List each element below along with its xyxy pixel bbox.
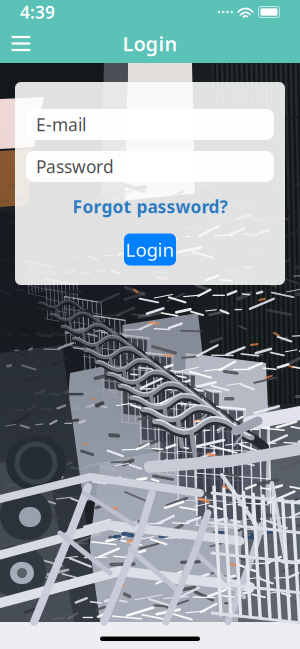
button[interactable]: E-mail (26, 109, 274, 140)
button[interactable]: Forgot password? (72, 200, 227, 213)
staticText: Forgot password? (72, 195, 227, 218)
staticText: 4:39 (20, 0, 55, 23)
button[interactable]: Menu (3, 25, 39, 61)
staticText: Login (122, 30, 177, 57)
button[interactable]: Login (124, 233, 176, 265)
staticText: Login (125, 237, 174, 262)
button[interactable]: Password (26, 151, 274, 182)
staticText: E-mail (36, 113, 86, 136)
staticText: Password (36, 155, 114, 178)
